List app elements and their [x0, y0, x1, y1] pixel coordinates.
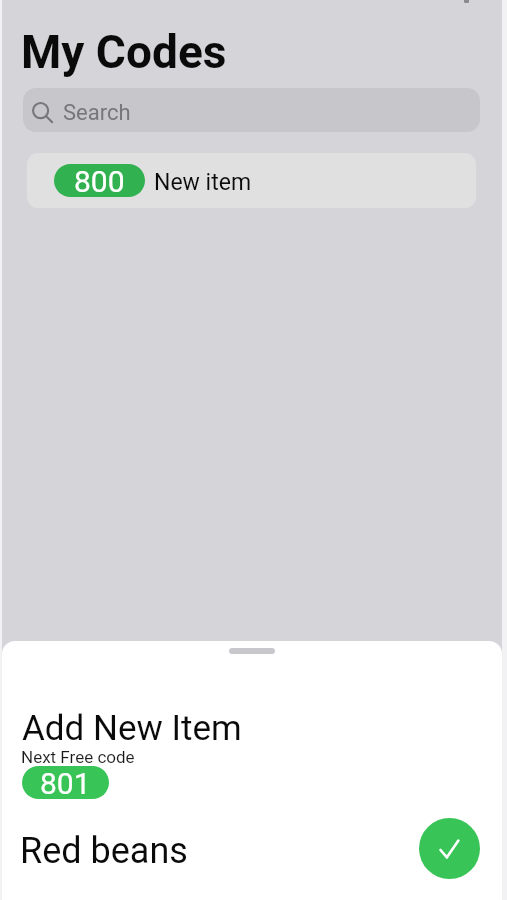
staticText: New item: [154, 169, 252, 196]
staticText: Next Free code: [21, 747, 135, 767]
staticText: My Codes: [21, 25, 227, 79]
staticText: Add New Item: [22, 708, 242, 749]
staticText: Search: [63, 100, 131, 126]
button[interactable]: 801: [22, 766, 109, 799]
staticText: 800: [74, 164, 125, 197]
button[interactable]: Drag handle: [229, 648, 275, 654]
button[interactable]: 800: [27, 153, 476, 208]
button[interactable]: Confirm: [419, 818, 480, 879]
staticText: Red beans: [20, 830, 188, 872]
staticText: 801: [40, 766, 91, 799]
button[interactable]: Search: [23, 88, 480, 132]
